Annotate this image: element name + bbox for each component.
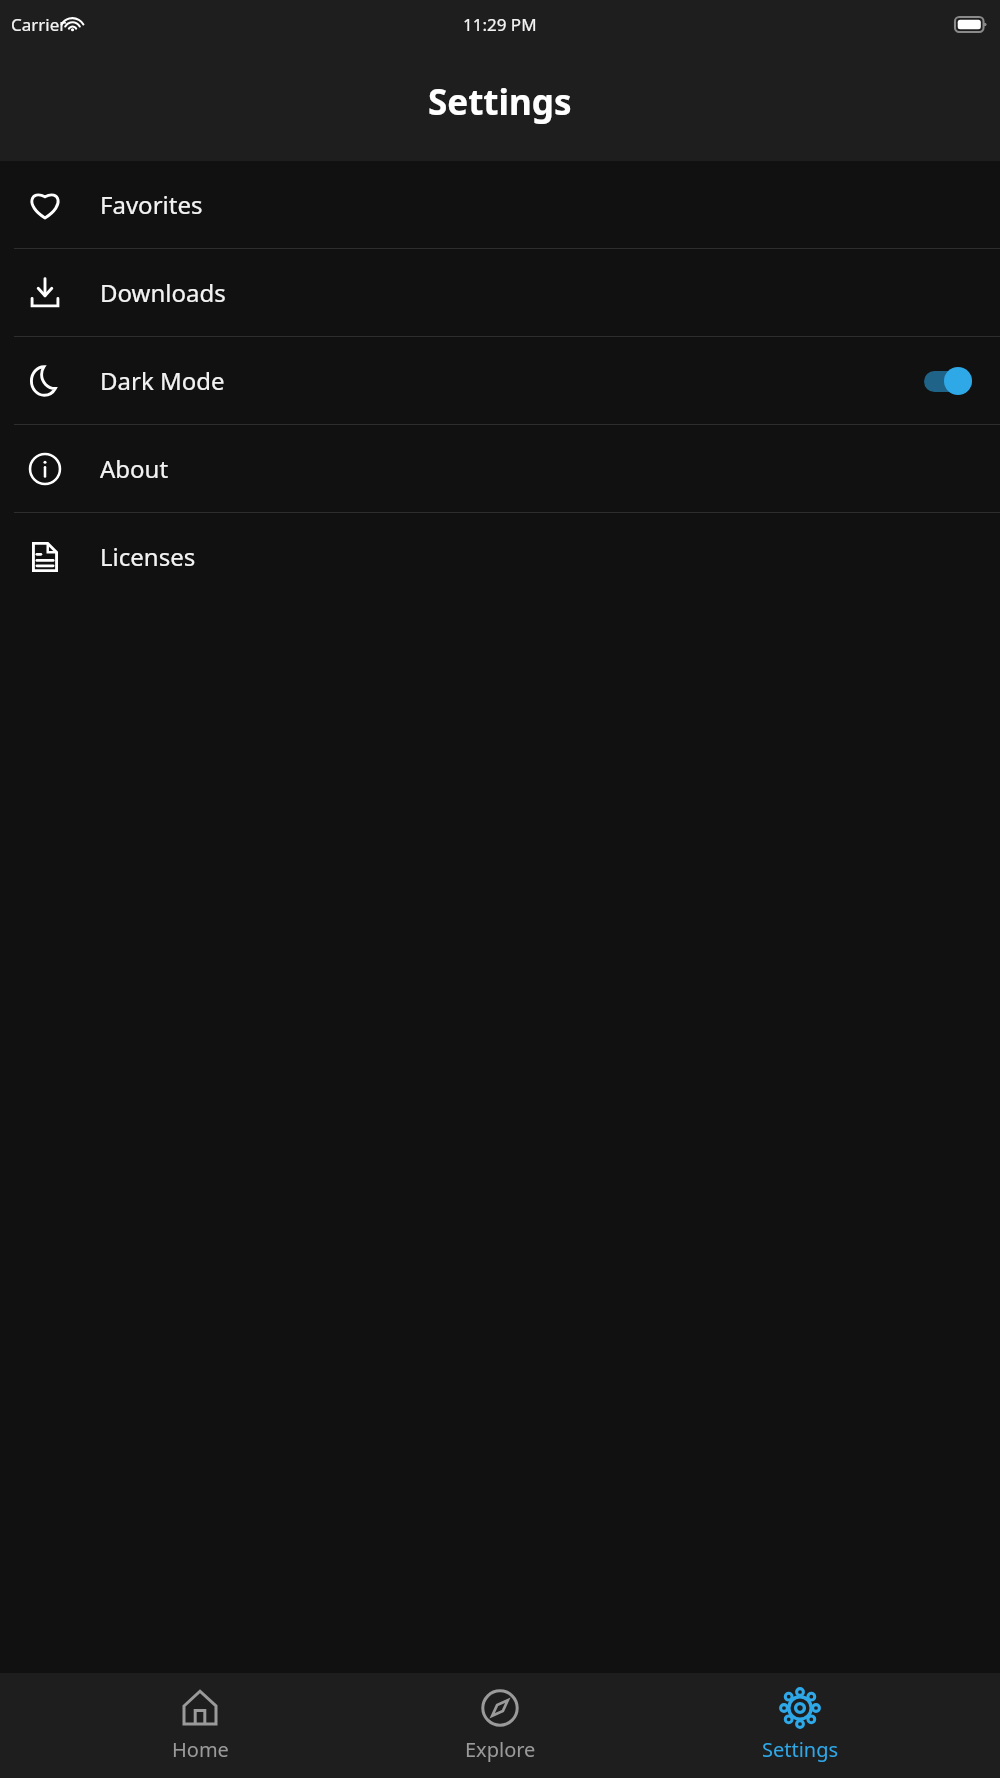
button[interactable]: Dark Mode xyxy=(0,337,1000,424)
staticText: Explore xyxy=(465,1736,536,1763)
button[interactable]: Explore xyxy=(400,1673,600,1778)
staticText: Dark Mode xyxy=(100,364,225,397)
button[interactable]: Settings xyxy=(700,1673,900,1778)
staticText: Home xyxy=(172,1736,229,1763)
staticText: Carrier xyxy=(11,13,67,36)
staticText: Settings xyxy=(762,1736,839,1763)
button[interactable]: About xyxy=(0,425,1000,512)
staticText: About xyxy=(100,452,169,485)
button[interactable]: Home xyxy=(100,1673,300,1778)
staticText: Licenses xyxy=(100,540,196,573)
button[interactable]: Dark Mode toggle xyxy=(924,367,972,395)
staticText: Settings xyxy=(428,78,572,126)
button[interactable]: Licenses xyxy=(0,513,1000,600)
button[interactable]: Downloads xyxy=(0,249,1000,336)
staticText: Downloads xyxy=(100,276,226,309)
staticText: Favorites xyxy=(100,188,203,221)
button[interactable]: Favorites xyxy=(0,161,1000,248)
staticText: 11:29 PM xyxy=(463,13,537,36)
